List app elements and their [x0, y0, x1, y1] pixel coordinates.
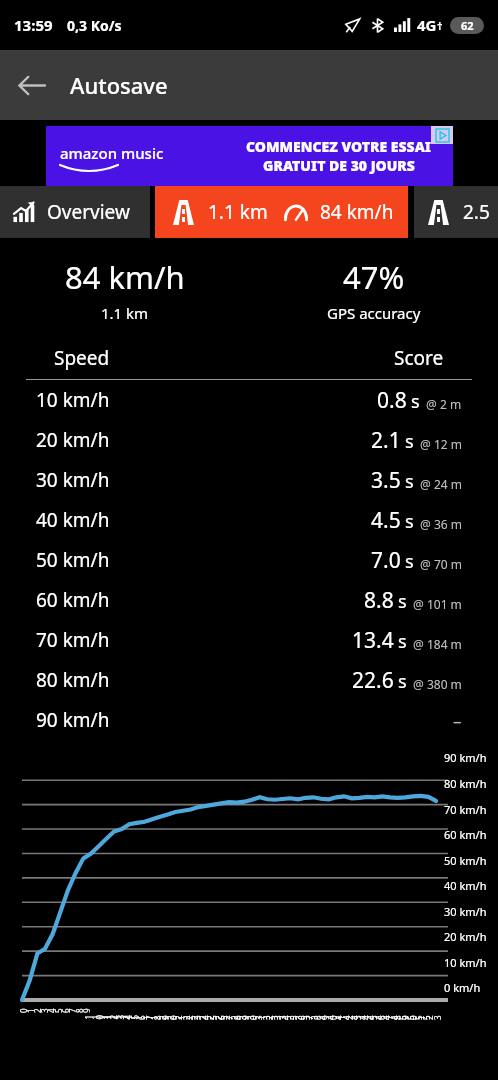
staticText: 17 — [133, 1012, 155, 1020]
staticText: 10 km/h — [36, 387, 110, 413]
staticText: 20 — [157, 1012, 179, 1020]
staticText: Overview — [47, 199, 130, 225]
staticText: s — [398, 589, 407, 614]
staticText: 16 — [125, 1012, 147, 1020]
staticText: 38 — [301, 1012, 323, 1020]
staticText: 30 km/h — [36, 467, 110, 493]
staticText: 50 km/h — [444, 853, 487, 868]
staticText: 46 — [365, 1012, 387, 1020]
staticText: GPS accuracy — [327, 303, 421, 323]
staticText: 27 — [213, 1012, 235, 1020]
button[interactable]: 20 km/h — [36, 420, 462, 460]
staticText: 40 km/h — [36, 507, 110, 533]
staticText: 80 km/h — [36, 667, 110, 693]
button[interactable]: 70 km/h — [36, 620, 462, 660]
staticText: 10 — [82, 1012, 104, 1019]
staticText: 8 — [74, 1008, 85, 1013]
staticText: 41 — [325, 1012, 347, 1020]
staticText: 49 — [389, 1012, 411, 1020]
staticText: 11 — [89, 1012, 111, 1019]
staticText: 70 km/h — [444, 802, 487, 817]
staticText: @ 24 m — [420, 476, 462, 492]
button[interactable]: 2.5 — [414, 186, 498, 238]
staticText: 51 — [405, 1012, 427, 1020]
staticText: 47 — [373, 1012, 395, 1020]
staticText: 4 — [46, 1008, 57, 1013]
staticText: 50 — [397, 1012, 419, 1020]
button[interactable]: 50 km/h — [36, 540, 462, 580]
staticText: 0 — [18, 1008, 29, 1013]
staticText: 60 km/h — [444, 827, 487, 842]
staticText: @ 101 m — [413, 596, 462, 612]
staticText: 53 — [421, 1012, 443, 1020]
staticText: s — [411, 389, 420, 414]
staticText: 30 — [237, 1012, 259, 1020]
staticText: 6 — [60, 1008, 71, 1013]
staticText: 31 — [245, 1012, 267, 1020]
staticText: 47% — [343, 256, 405, 298]
staticText: 37 — [293, 1012, 315, 1020]
button[interactable]: Overview — [0, 186, 150, 238]
staticText: 84 km/h — [65, 256, 185, 298]
staticText: 22.6 — [352, 666, 394, 695]
staticText: 1.1 km — [208, 199, 268, 225]
button[interactable]: 40 km/h — [36, 500, 462, 540]
staticText: 12 — [96, 1012, 118, 1019]
staticText: 2.1 — [371, 426, 401, 455]
staticText: 7.0 — [371, 546, 401, 575]
staticText: s — [398, 669, 407, 694]
staticText: @ 12 m — [420, 436, 462, 452]
staticText: 4.5 — [371, 506, 401, 535]
button[interactable]: Back — [0, 54, 62, 116]
staticText: 29 — [229, 1012, 251, 1020]
staticText: 52 — [413, 1012, 435, 1020]
staticText: 34 — [269, 1012, 291, 1020]
staticText: 84 km/h — [320, 199, 394, 225]
staticText: @ 2 m — [426, 396, 462, 412]
staticText: 0,3 Ko/s — [67, 16, 122, 35]
button[interactable]: 10 km/h — [36, 380, 462, 420]
staticText: 21 — [165, 1012, 187, 1020]
staticText: † — [437, 18, 443, 33]
button[interactable]: 1.1 km — [155, 186, 408, 238]
button[interactable]: 80 km/h — [36, 660, 462, 700]
staticText: 0.8 — [377, 386, 407, 415]
staticText: 40 km/h — [444, 878, 487, 893]
staticText: amazon music — [60, 143, 164, 163]
staticText: – — [453, 709, 462, 732]
staticText: COMMENCEZ VOTRE ESSAI — [246, 137, 431, 156]
staticText: 13:59 — [14, 15, 53, 35]
staticText: 50 km/h — [36, 547, 110, 573]
staticText: 90 km/h — [36, 707, 110, 733]
staticText: s — [405, 429, 414, 454]
staticText: 26 — [205, 1012, 227, 1020]
button[interactable]: 30 km/h — [36, 460, 462, 500]
staticText: 19 — [149, 1012, 171, 1020]
staticText: 42 — [333, 1012, 355, 1020]
staticText: 18 — [141, 1012, 163, 1020]
staticText: s — [405, 509, 414, 534]
staticText: 48 — [381, 1012, 403, 1020]
staticText: 39 — [309, 1012, 331, 1020]
staticText: GRATUIT DE 30 JOURS — [263, 156, 415, 175]
staticText: 30 km/h — [444, 904, 487, 919]
staticText: @ 70 m — [420, 556, 462, 572]
staticText: 25 — [197, 1012, 219, 1020]
staticText: 4G — [417, 15, 437, 35]
staticText: s — [398, 629, 407, 654]
button[interactable]: 90 km/h — [36, 700, 462, 740]
staticText: 20 km/h — [444, 929, 487, 944]
staticText: 70 km/h — [36, 627, 110, 653]
button[interactable]: amazon music — [46, 126, 453, 186]
staticText: 28 — [221, 1012, 243, 1020]
staticText: 2 — [32, 1008, 43, 1013]
staticText: 35 — [277, 1012, 299, 1020]
staticText: @ 36 m — [420, 516, 462, 532]
staticText: 90 km/h — [444, 750, 487, 765]
staticText: s — [405, 549, 414, 574]
staticText: 0 km/h — [444, 980, 481, 995]
button[interactable]: 60 km/h — [36, 580, 462, 620]
staticText: 10 km/h — [444, 955, 487, 970]
staticText: 62 — [461, 18, 474, 33]
staticText: 9 — [81, 1008, 92, 1013]
